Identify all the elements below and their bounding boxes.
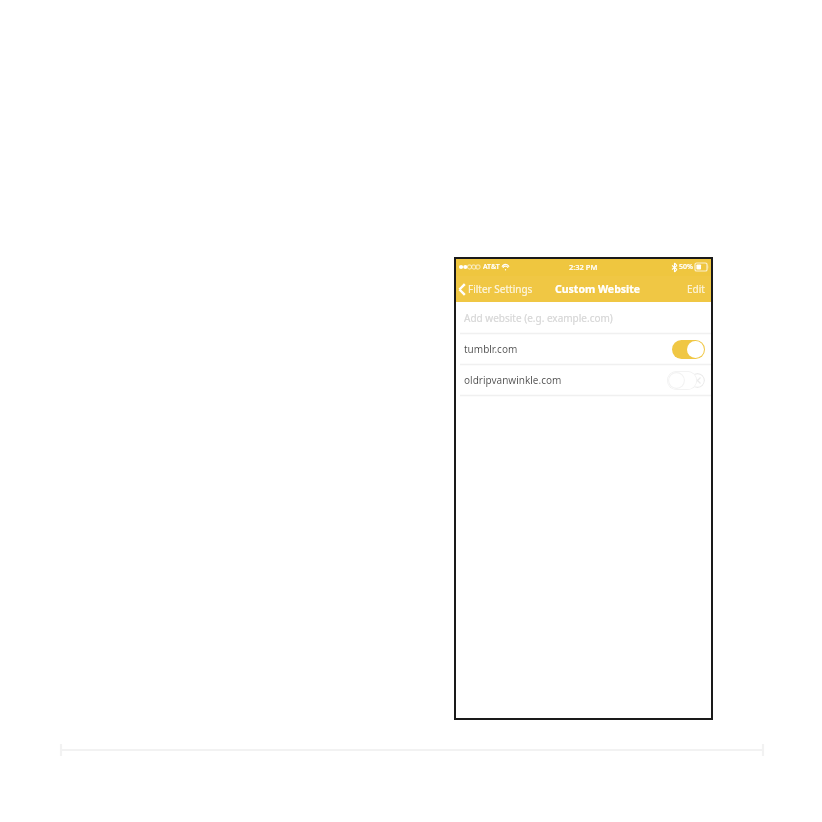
button[interactable]: oldripvanwinkle.com xyxy=(454,365,713,395)
staticText: 50% xyxy=(679,262,693,272)
staticText: AT&T xyxy=(483,262,500,272)
button[interactable]: Add website (e.g. example.com) xyxy=(454,302,713,333)
button[interactable]: Delete oldripvanwinkle.com xyxy=(690,373,705,388)
staticText: Add website (e.g. example.com) xyxy=(464,311,613,325)
staticText: Edit xyxy=(687,282,705,296)
button[interactable]: Edit xyxy=(679,276,713,302)
staticText: tumblr.com xyxy=(464,342,518,356)
button[interactable]: Toggle tumblr.com on xyxy=(672,340,705,359)
staticText: 2:32 PM xyxy=(569,262,598,272)
staticText: Custom Website xyxy=(555,282,641,296)
staticText: oldripvanwinkle.com xyxy=(464,373,562,387)
staticText: Filter Settings xyxy=(468,282,533,296)
button[interactable]: Toggle oldripvanwinkle.com off xyxy=(667,371,697,390)
button[interactable]: tumblr.com xyxy=(454,334,713,364)
button[interactable]: Filter Settings xyxy=(454,276,539,302)
